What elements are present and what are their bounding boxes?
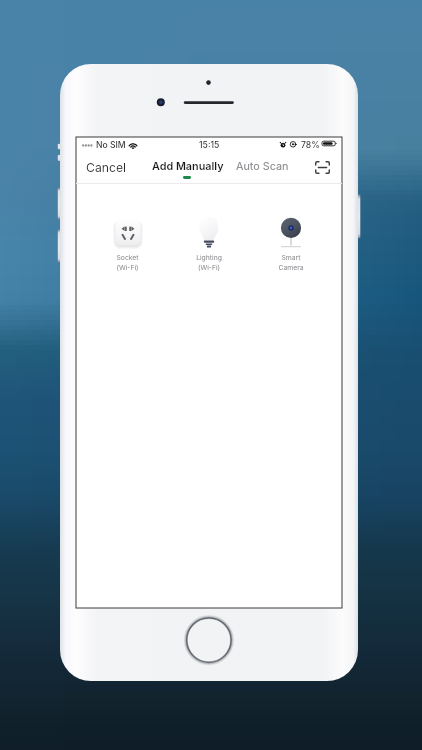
staticText: Add Manually (152, 160, 224, 173)
staticText: Auto Scan (236, 160, 289, 173)
staticText: Cancel (86, 160, 126, 175)
button[interactable]: Auto Scan (230, 156, 295, 177)
button[interactable]: Lighting (Wi-Fi) (168, 211, 250, 271)
button[interactable]: Socket (Wi-Fi) (86, 211, 168, 271)
staticText: Smart Camera (278, 253, 304, 271)
button[interactable]: Cancel (80, 156, 132, 179)
staticText: 78% (301, 140, 320, 150)
staticText: Socket (Wi-Fi) (116, 253, 139, 271)
button[interactable]: Add Manually (146, 156, 230, 177)
staticText: Lighting (Wi-Fi) (196, 253, 222, 271)
button[interactable]: Scan QR code (310, 156, 335, 179)
button[interactable]: Smart Camera (250, 211, 332, 271)
staticText: 15:15 (199, 140, 220, 150)
staticText: No SIM (96, 140, 126, 150)
